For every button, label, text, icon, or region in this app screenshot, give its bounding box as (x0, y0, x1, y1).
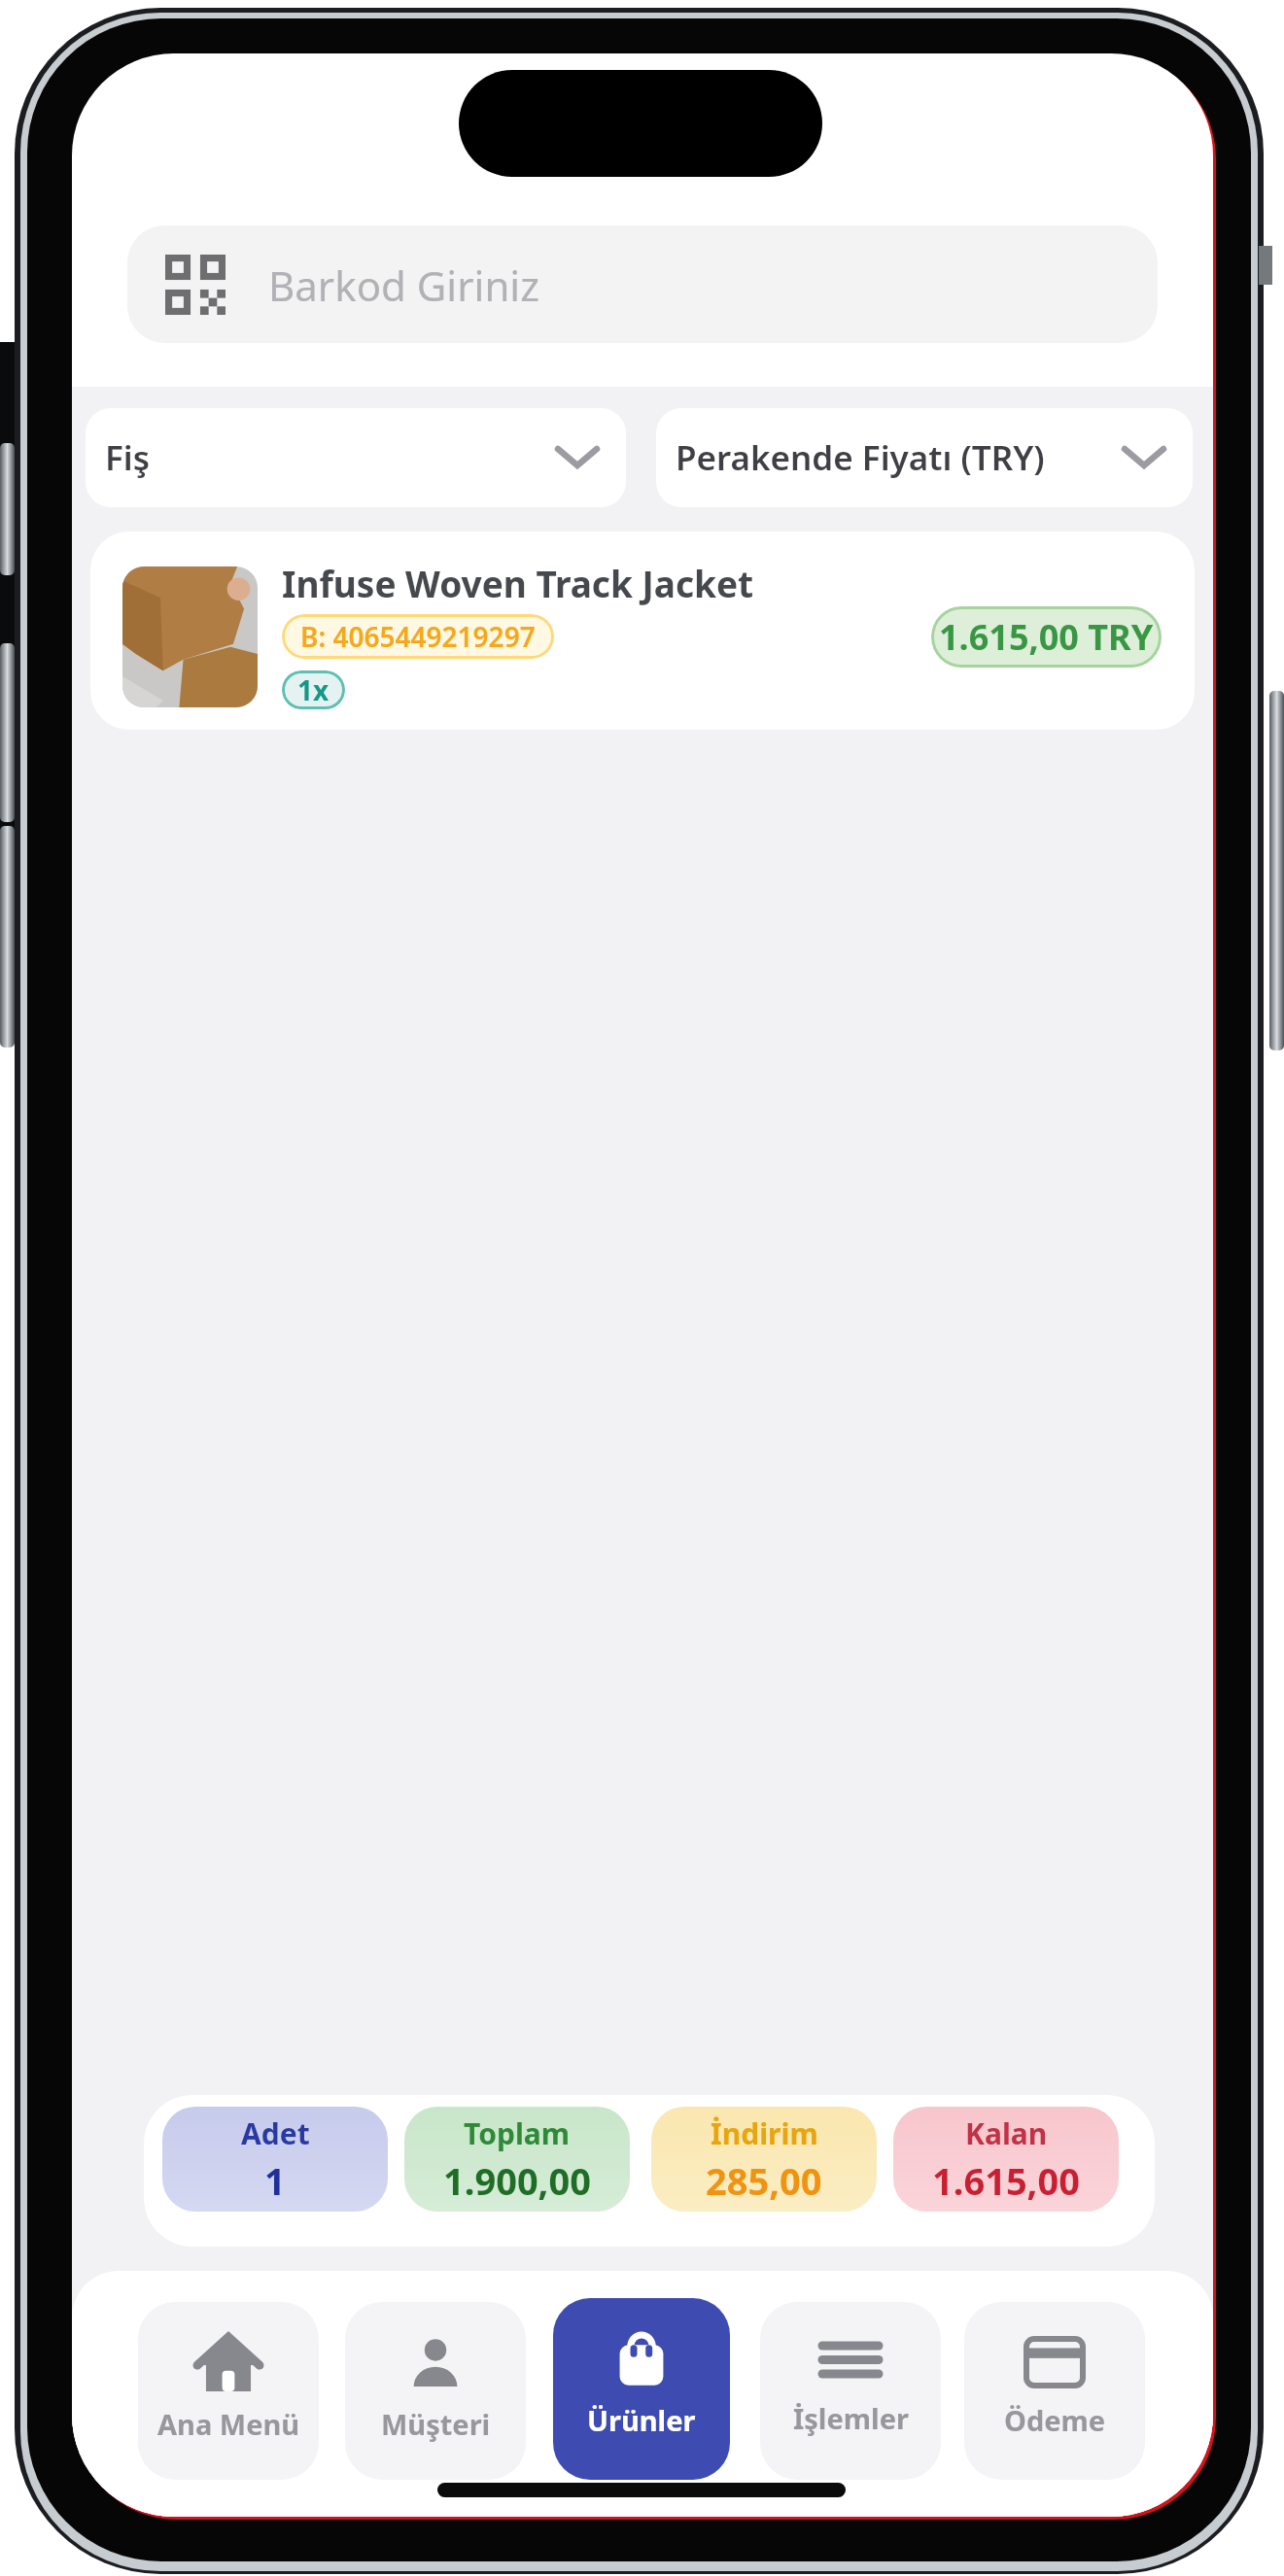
staticText: Fiş (105, 434, 150, 481)
staticText: Ödeme (1004, 2401, 1106, 2439)
staticText: 1 (264, 2155, 286, 2206)
staticText: İndirim (711, 2113, 818, 2153)
staticText: 1.615,00 (932, 2155, 1080, 2206)
button[interactable]: Ürünler (553, 2298, 730, 2480)
staticText: 1x (297, 671, 330, 708)
button[interactable]: Adet (162, 2107, 388, 2212)
staticText: Ana Menü (157, 2405, 300, 2443)
staticText: Barkod Giriniz (268, 258, 539, 313)
button[interactable]: Ödeme (964, 2302, 1145, 2480)
button[interactable]: Kalan (893, 2107, 1119, 2212)
staticText: Kalan (965, 2113, 1048, 2153)
button[interactable]: İndirim (651, 2107, 877, 2212)
button[interactable]: Infuse Woven Track Jacket (90, 532, 1195, 730)
button[interactable]: Müşteri (345, 2302, 526, 2480)
button[interactable]: Ana Menü (138, 2302, 319, 2480)
staticText: 1.900,00 (443, 2155, 591, 2206)
button[interactable]: İşlemler (760, 2302, 941, 2480)
staticText: 285,00 (706, 2155, 822, 2206)
staticText: 1.615,00 TRY (939, 613, 1154, 661)
button[interactable]: Toplam (404, 2107, 630, 2212)
staticText: Infuse Woven Track Jacket (282, 559, 754, 607)
staticText: B: 4065449219297 (300, 618, 536, 655)
staticText: Toplam (464, 2113, 571, 2153)
button[interactable]: Perakende Fiyatı (TRY) (656, 408, 1193, 507)
button[interactable]: Barkod Giriniz (127, 225, 1158, 343)
staticText: Müşteri (381, 2405, 491, 2443)
staticText: İşlemler (793, 2399, 909, 2437)
staticText: Adet (241, 2113, 310, 2153)
staticText: Perakende Fiyatı (TRY) (676, 434, 1045, 481)
staticText: Ürünler (587, 2401, 696, 2439)
button[interactable]: Fiş (86, 408, 626, 507)
